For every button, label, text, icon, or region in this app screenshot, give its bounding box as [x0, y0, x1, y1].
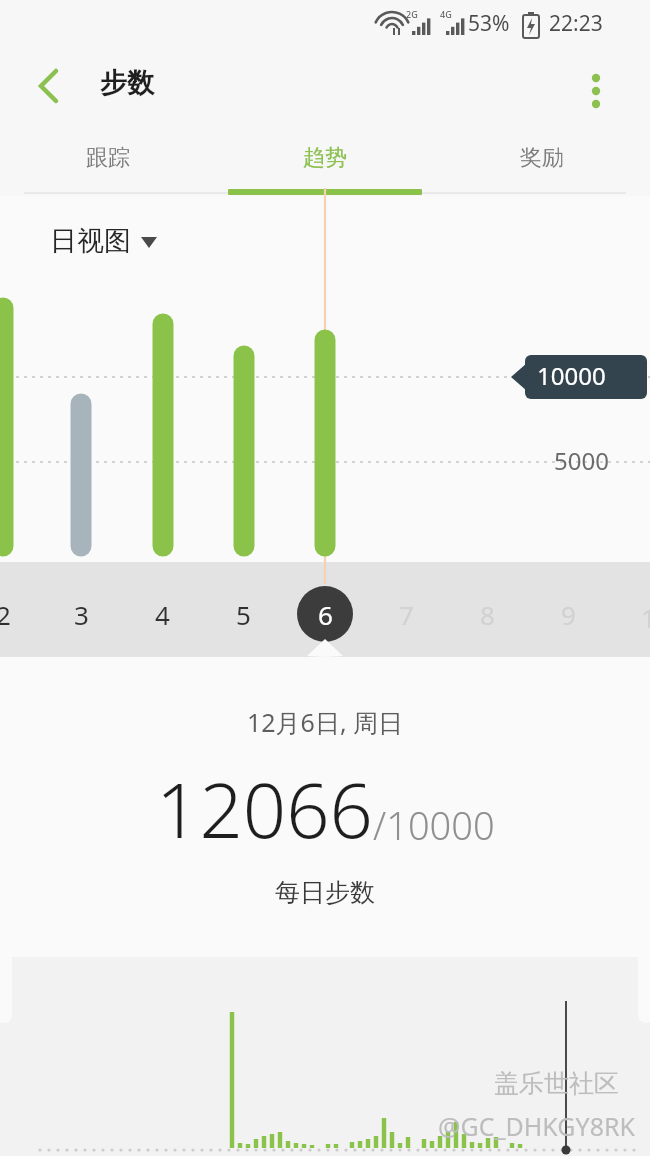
staticText: 5 — [236, 597, 251, 632]
staticText: 12066 — [156, 757, 373, 861]
staticText: 6 — [318, 597, 333, 632]
staticText: 5000 — [554, 444, 609, 477]
staticText: 53% — [468, 9, 510, 38]
staticText: /10000 — [373, 799, 495, 851]
staticText: 跟踪 — [86, 144, 130, 172]
staticText: 3 — [74, 597, 89, 632]
button[interactable]: 6 — [299, 588, 351, 640]
staticText: 10000 — [537, 359, 606, 392]
button[interactable]: 9 — [542, 588, 594, 640]
button[interactable]: 日视图 — [50, 224, 159, 258]
button[interactable]: More options — [566, 56, 622, 112]
staticText: 7 — [399, 597, 414, 632]
staticText: 8 — [480, 597, 495, 632]
button[interactable]: 奖励 — [433, 128, 650, 196]
staticText: 2 — [0, 597, 11, 632]
button[interactable]: 跟踪 — [0, 128, 216, 196]
button[interactable]: Back — [18, 56, 78, 116]
button[interactable]: 趋势 — [216, 128, 433, 196]
staticText: 4G — [440, 8, 452, 20]
staticText: 步数 — [100, 66, 154, 100]
button[interactable]: 8 — [461, 588, 513, 640]
staticText: 9 — [561, 597, 576, 632]
staticText: @GC_DHKGY8RK — [438, 1109, 636, 1143]
button[interactable]: 5 — [217, 588, 269, 640]
staticText: 趋势 — [303, 144, 347, 172]
staticText: 4 — [155, 597, 170, 632]
staticText: 奖励 — [520, 144, 564, 172]
button[interactable]: 2 — [0, 588, 29, 640]
staticText: 2G — [406, 8, 418, 20]
staticText: 1 — [641, 600, 650, 635]
button[interactable]: 4 — [136, 588, 188, 640]
staticText: 日视图 — [50, 224, 131, 258]
staticText: 盖乐世社区 — [494, 1068, 619, 1099]
staticText: 12月6日, 周日 — [247, 705, 404, 739]
button[interactable]: 3 — [55, 588, 107, 640]
staticText: 22:23 — [549, 9, 603, 38]
staticText: 每日步数 — [275, 877, 375, 908]
